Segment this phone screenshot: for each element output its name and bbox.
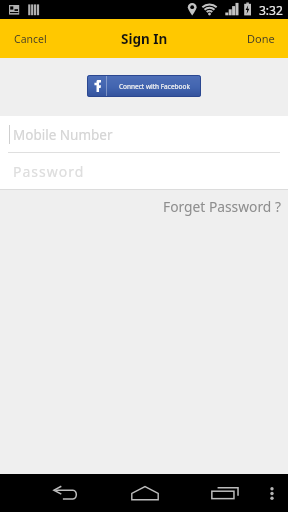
staticText: Sign In <box>121 30 168 48</box>
button[interactable]: Home <box>104 474 186 512</box>
staticText: 3:32 <box>259 2 283 18</box>
button[interactable]: Connect with Facebook <box>87 75 201 97</box>
staticText: Cancel <box>14 32 47 46</box>
button[interactable]: Back <box>0 474 104 512</box>
button[interactable]: Done <box>235 23 288 54</box>
staticText: Mobile Number <box>13 126 113 144</box>
staticText: Connect with Facebook <box>119 82 190 91</box>
button[interactable]: Password <box>0 153 288 189</box>
staticText: Password <box>13 162 85 181</box>
button[interactable]: Cancel <box>0 24 59 54</box>
button[interactable]: Recent apps <box>186 474 264 512</box>
button[interactable]: Mobile Number <box>0 116 288 152</box>
button[interactable]: More options <box>264 474 288 512</box>
staticText: Done <box>247 31 275 46</box>
button[interactable]: Forget Password ? <box>163 197 288 216</box>
